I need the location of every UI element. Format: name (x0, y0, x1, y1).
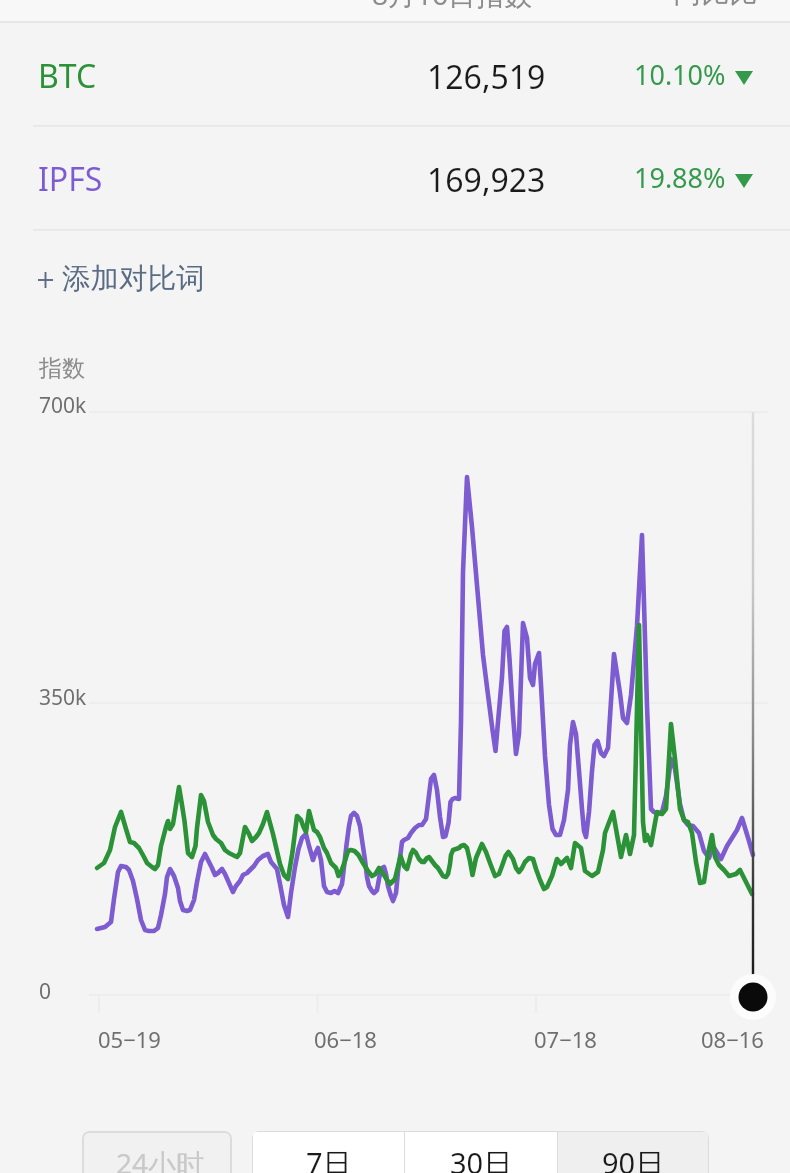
staticText: 30日 (450, 1143, 513, 1173)
staticText: 10.10% (634, 56, 726, 93)
staticText: 90日 (602, 1143, 665, 1173)
staticText: 05−19 (98, 1024, 161, 1054)
staticText: 08−16 (701, 1024, 764, 1054)
staticText: 24小时 (116, 1144, 205, 1173)
staticText: 169,923 (427, 158, 546, 202)
staticText: 0 (39, 977, 52, 1006)
button[interactable]: 90日 (558, 1132, 708, 1173)
staticText: 同比比 (673, 0, 757, 10)
staticText: BTC (38, 54, 97, 98)
button[interactable]: 添加对比词 (0, 231, 790, 323)
button[interactable]: 24小时 (82, 1131, 232, 1173)
staticText: 06−18 (314, 1024, 377, 1054)
staticText: 指数 (39, 354, 85, 383)
staticText: 350k (39, 683, 87, 712)
staticText: IPFS (38, 157, 103, 201)
staticText: 8月16日指数 (372, 0, 533, 13)
staticText: 添加对比词 (62, 261, 205, 297)
staticText: 126,519 (427, 55, 546, 99)
staticText: 07−18 (534, 1024, 597, 1054)
button[interactable]: IPFS (0, 126, 790, 230)
button[interactable]: 30日 (405, 1132, 557, 1173)
staticText: 7日 (306, 1143, 352, 1173)
button[interactable]: BTC (0, 23, 790, 126)
staticText: 19.88% (634, 159, 726, 196)
staticText: 700k (39, 391, 87, 420)
button[interactable]: 7日 (253, 1132, 404, 1173)
